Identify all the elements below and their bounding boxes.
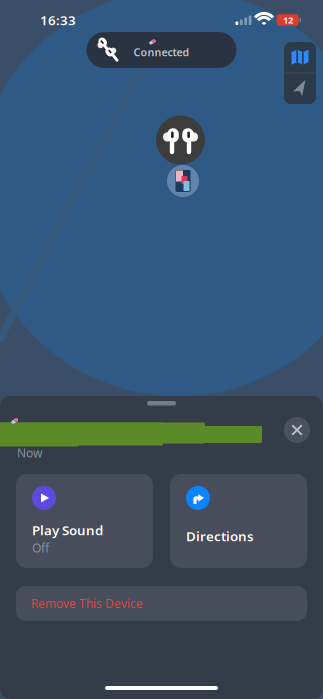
staticText: Now xyxy=(17,445,42,461)
staticText: Play Sound xyxy=(32,521,103,539)
button[interactable]: Close xyxy=(282,415,312,445)
button[interactable]: Map type xyxy=(284,42,316,73)
staticText: 16:33 xyxy=(40,11,76,29)
button[interactable]: Show current location xyxy=(284,73,316,104)
staticText: Off xyxy=(32,540,49,556)
staticText: Directions xyxy=(186,527,254,545)
staticText: Connected xyxy=(133,45,189,59)
button[interactable]: Remove This Device xyxy=(16,586,307,621)
button[interactable]: Directions xyxy=(170,474,307,568)
staticText: Remove This Device xyxy=(31,595,143,611)
button[interactable]: Play Sound xyxy=(16,474,153,568)
staticText: 12 xyxy=(283,14,293,26)
button[interactable]: Connected xyxy=(86,32,236,68)
